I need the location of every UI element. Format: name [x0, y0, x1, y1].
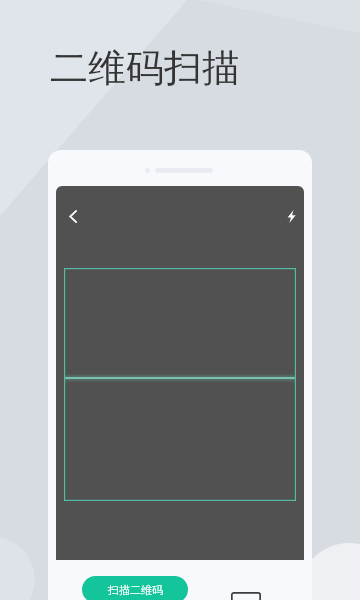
button[interactable]: 扫描二维码 [82, 576, 188, 600]
button[interactable]: Toggle flash [276, 201, 304, 231]
button[interactable]: Back [58, 201, 88, 231]
button[interactable]: Open album [231, 592, 261, 600]
staticText: 扫描二维码 [108, 583, 163, 597]
staticText: 二维码扫描 [50, 44, 240, 92]
